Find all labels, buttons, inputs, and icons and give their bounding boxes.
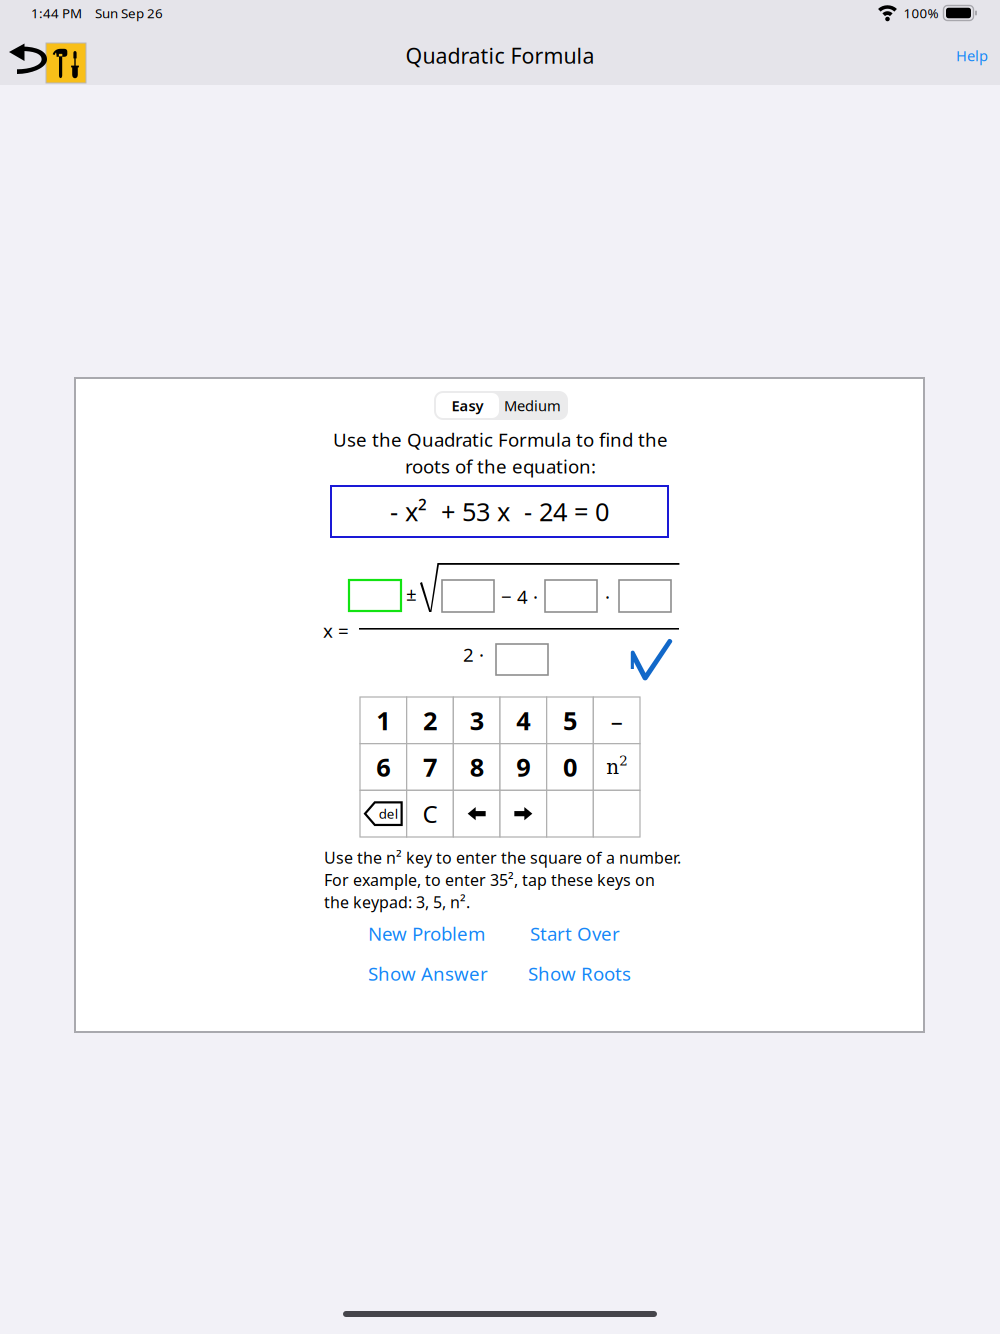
button[interactable]: 7: [407, 744, 453, 790]
button[interactable]: Move right: [500, 790, 547, 837]
button[interactable]: Show Roots: [522, 957, 637, 990]
staticText: 6: [376, 750, 390, 784]
staticText: 5: [563, 703, 577, 737]
staticText: 1:44 PM: [31, 4, 82, 22]
staticText: 0: [563, 750, 577, 784]
staticText: Use the Quadratic Formula to find the: [333, 427, 668, 452]
staticText: 2 ·: [463, 642, 484, 667]
button[interactable]: Medium: [499, 393, 566, 418]
staticText: del: [379, 805, 398, 822]
button[interactable]: 3: [453, 697, 500, 744]
staticText: Help: [956, 46, 988, 65]
button[interactable]: Back: [0, 28, 48, 82]
staticText: 100%: [903, 4, 938, 22]
staticText: Show Roots: [528, 961, 631, 986]
staticText: 4: [516, 703, 530, 737]
button[interactable]: Move left: [453, 790, 500, 837]
staticText: 8: [470, 750, 484, 784]
staticText: ±: [406, 581, 417, 606]
staticText: For example, to enter 35², tap these key…: [324, 869, 655, 890]
button[interactable]: 0: [547, 744, 593, 790]
button[interactable]: Easy: [436, 393, 499, 418]
button[interactable]: Delete: [360, 790, 407, 837]
button[interactable]: 1: [360, 697, 407, 744]
staticText: ·: [605, 584, 610, 609]
button[interactable]: 4: [500, 697, 547, 744]
staticText: Sun Sep 26: [95, 4, 163, 22]
button[interactable]: Show Answer: [362, 957, 494, 990]
button[interactable]: New Problem: [362, 917, 491, 950]
staticText: Use the n² key to enter the square of a …: [324, 847, 681, 868]
button[interactable]: Help: [946, 34, 998, 77]
staticText: 2: [423, 703, 437, 737]
staticText: 1: [376, 703, 390, 737]
button[interactable]: 2: [407, 697, 453, 744]
button[interactable]: –: [593, 697, 640, 744]
staticText: n: [606, 755, 619, 779]
staticText: 3: [470, 703, 484, 737]
button[interactable]: 9: [500, 744, 547, 790]
staticText: C: [422, 798, 437, 830]
staticText: Quadratic Formula: [405, 41, 594, 70]
staticText: roots of the equation:: [405, 454, 596, 479]
staticText: 2: [619, 753, 627, 769]
staticText: Start Over: [530, 921, 620, 946]
button[interactable]: Tools: [0, 25, 86, 86]
staticText: 7: [423, 750, 437, 784]
staticText: the keypad: 3, 5, n².: [324, 891, 470, 913]
staticText: New Problem: [368, 921, 485, 946]
staticText: - x² + 53 x - 24 = 0: [390, 495, 609, 528]
button[interactable]: 6: [360, 744, 407, 790]
staticText: Show Answer: [368, 961, 488, 986]
staticText: − 4 ·: [501, 584, 538, 609]
staticText: –: [611, 704, 623, 736]
button[interactable]: 8: [453, 744, 500, 790]
staticText: Medium: [504, 396, 561, 415]
staticText: x =: [323, 618, 349, 643]
button[interactable]: 5: [547, 697, 593, 744]
button[interactable]: Start Over: [524, 917, 626, 950]
button[interactable]: n squared: [593, 744, 640, 790]
staticText: 9: [516, 750, 530, 784]
button[interactable]: C: [407, 790, 453, 837]
staticText: Easy: [451, 396, 483, 415]
